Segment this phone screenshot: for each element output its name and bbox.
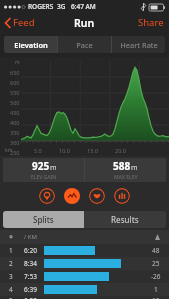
staticText: 2 xyxy=(9,259,13,268)
staticText: 6:39 xyxy=(24,285,44,294)
button[interactable]: Heart Rate xyxy=(112,36,165,53)
button[interactable]: Results xyxy=(84,211,166,228)
staticText: Results xyxy=(111,214,139,225)
button[interactable]: 588 xyxy=(85,158,166,182)
staticText: 4 xyxy=(9,285,13,294)
button[interactable]: Stats xyxy=(114,188,130,204)
staticText: 500 xyxy=(10,99,20,106)
button[interactable]: 1 xyxy=(0,244,169,257)
staticText: 3 xyxy=(9,272,13,281)
button[interactable]: 5 xyxy=(0,296,169,299)
staticText: 8:34 xyxy=(24,259,44,268)
staticText: Heart Rate xyxy=(120,40,158,50)
staticText: 6:47 AM xyxy=(71,2,96,11)
staticText: Run xyxy=(74,16,95,30)
staticText: km xyxy=(5,147,13,154)
button[interactable]: Splits xyxy=(3,211,84,228)
staticText: 300 xyxy=(10,139,20,146)
staticText: 350 xyxy=(10,129,20,136)
button[interactable]: Pace xyxy=(58,36,111,53)
staticText: 588 xyxy=(113,159,131,173)
staticText: 10.0 xyxy=(59,147,70,154)
staticText: 6:50 xyxy=(24,296,44,299)
staticText: 48 xyxy=(152,246,160,255)
staticText: 1 xyxy=(154,285,158,294)
button[interactable]: 925 xyxy=(3,158,84,182)
staticText: m xyxy=(50,163,57,173)
button[interactable]: 3 xyxy=(0,270,169,283)
staticText: 25 xyxy=(152,259,160,268)
staticText: 5 xyxy=(9,296,13,299)
staticText: Splits xyxy=(33,214,54,225)
button[interactable]: Heart rate xyxy=(89,188,105,204)
button[interactable]: Elevation xyxy=(64,188,80,204)
staticText: 400 xyxy=(10,119,20,126)
staticText: 650 xyxy=(10,69,20,76)
staticText: 250 xyxy=(10,149,20,156)
button[interactable]: 2 xyxy=(0,257,169,270)
staticText: 5.0 xyxy=(34,147,42,154)
staticText: m xyxy=(131,163,138,173)
staticText: Elevation xyxy=(14,40,48,50)
button[interactable]: Feed xyxy=(3,14,37,31)
staticText: -26 xyxy=(151,272,161,281)
staticText: m xyxy=(15,59,20,66)
button[interactable]: Elevation xyxy=(4,36,57,53)
staticText: Pace xyxy=(76,40,93,50)
button[interactable]: Location xyxy=(39,188,55,204)
button[interactable]: Share xyxy=(133,13,169,32)
staticText: / KM xyxy=(24,233,37,241)
staticText: MAX ELEV xyxy=(114,174,138,181)
staticText: 550 xyxy=(10,89,20,96)
staticText: 7:53 xyxy=(24,272,44,281)
staticText: ROGERS xyxy=(28,2,54,11)
staticText: 450 xyxy=(10,109,20,116)
staticText: 15.0 xyxy=(87,147,98,154)
staticText: 6:20 xyxy=(24,246,44,255)
staticText: 3G xyxy=(57,2,66,11)
staticText: 12 xyxy=(152,296,160,299)
staticText: 925 xyxy=(32,159,50,173)
staticText: 600 xyxy=(10,79,20,86)
staticText: 20.0 xyxy=(115,147,126,154)
button[interactable]: 4 xyxy=(0,283,169,296)
staticText: Feed xyxy=(13,16,35,29)
staticText: 1 xyxy=(9,246,13,255)
staticText: ELEV GAIN xyxy=(31,174,57,181)
